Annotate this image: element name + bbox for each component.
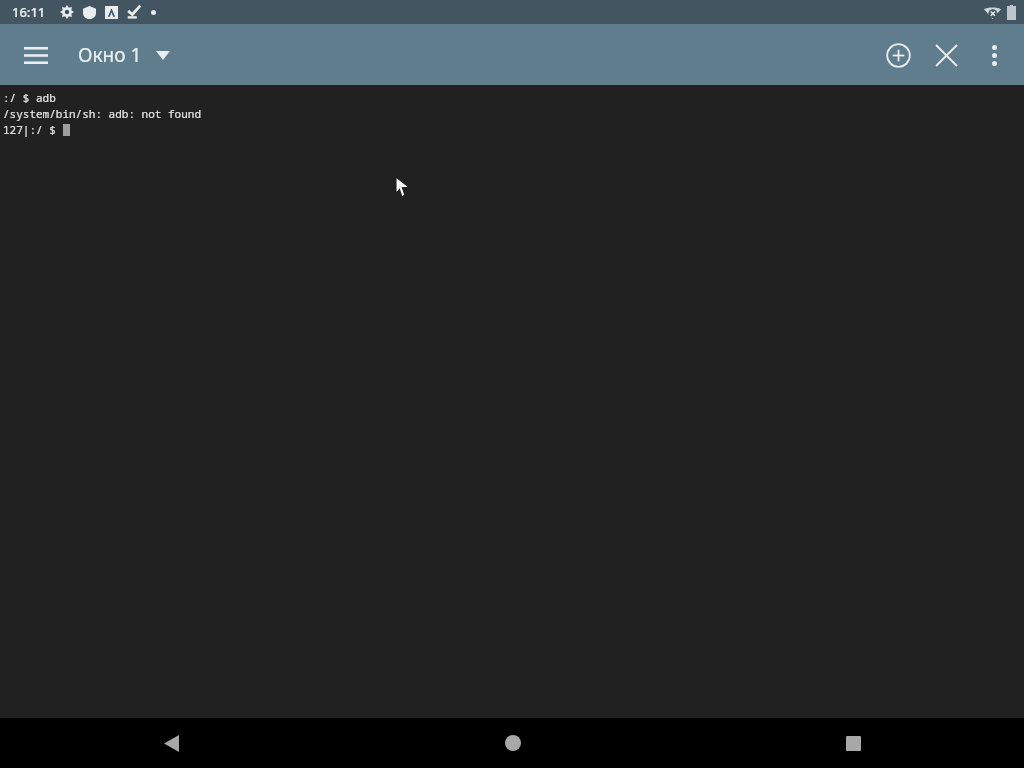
staticText: :/ $ adb [3, 90, 56, 105]
staticText: /system/bin/sh: adb: not found [3, 106, 201, 121]
button[interactable]: Open navigation drawer [12, 31, 60, 79]
button[interactable]: Home [342, 718, 683, 768]
button[interactable]: Back [0, 718, 342, 768]
staticText: 16:11 [12, 3, 46, 21]
staticText: Окно 1 [78, 42, 142, 68]
button[interactable]: Окно 1 [78, 42, 170, 68]
button[interactable]: :/ $ adb [0, 85, 1024, 718]
button[interactable]: Recent apps [683, 718, 1024, 768]
button[interactable]: More options [970, 31, 1018, 79]
button[interactable]: Close window [922, 31, 970, 79]
button[interactable]: New window [874, 31, 922, 79]
staticText: 127|:/ $ [3, 122, 63, 137]
